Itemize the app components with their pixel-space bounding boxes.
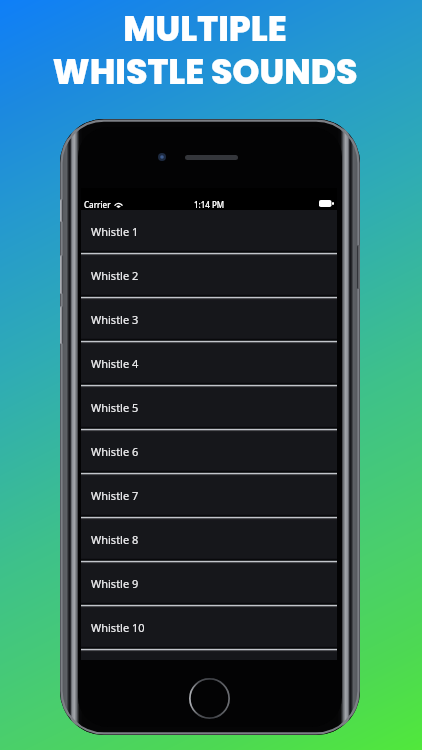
staticText: Whistle 6	[91, 444, 139, 459]
staticText: Whistle 1	[91, 224, 139, 239]
staticText: MULTIPLE WHISTLE SOUNDS	[0, 5, 416, 96]
staticText: Whistle 3	[91, 312, 139, 327]
staticText: Whistle 9	[91, 576, 139, 591]
button[interactable]: Whistle 3	[81, 298, 337, 342]
button[interactable]: Whistle 10	[81, 606, 337, 650]
staticText: Whistle 8	[91, 532, 139, 547]
staticText: Whistle 10	[91, 620, 145, 635]
staticText: 1:14 PM	[194, 199, 225, 210]
button[interactable]: Whistle 5	[81, 386, 337, 430]
staticText: Whistle 7	[91, 488, 139, 503]
staticText: Carrier	[84, 199, 111, 210]
button[interactable]: Whistle 6	[81, 430, 337, 474]
button[interactable]: Whistle 1	[81, 210, 337, 254]
button[interactable]: Whistle 7	[81, 474, 337, 518]
button[interactable]: Whistle 2	[81, 254, 337, 298]
staticText: Whistle 2	[91, 268, 139, 283]
button[interactable]: Whistle 8	[81, 518, 337, 562]
button[interactable]: Whistle 4	[81, 342, 337, 386]
staticText: Whistle 4	[91, 356, 139, 371]
button[interactable]: Whistle 9	[81, 562, 337, 606]
staticText: Whistle 5	[91, 400, 139, 415]
